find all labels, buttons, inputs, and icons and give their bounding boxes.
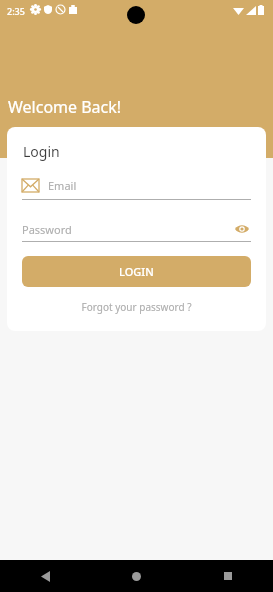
staticText: Login (23, 142, 60, 161)
button[interactable]: Recent apps (182, 560, 273, 592)
button[interactable]: Home (91, 560, 182, 592)
button[interactable]: Show password (233, 220, 251, 238)
staticText: Forgot your password ? (81, 300, 192, 314)
staticText: LOGIN (119, 264, 154, 279)
button[interactable]: Back (0, 560, 91, 592)
staticText: Email (48, 178, 77, 193)
staticText: Welcome Back! (8, 96, 122, 118)
staticText: 2:35 (7, 5, 25, 17)
button[interactable]: Forgot your password ? (7, 300, 266, 314)
staticText: Password (22, 222, 72, 237)
button[interactable]: LOGIN (22, 256, 251, 287)
button[interactable]: Email (22, 178, 251, 200)
button[interactable]: Password (22, 220, 251, 242)
